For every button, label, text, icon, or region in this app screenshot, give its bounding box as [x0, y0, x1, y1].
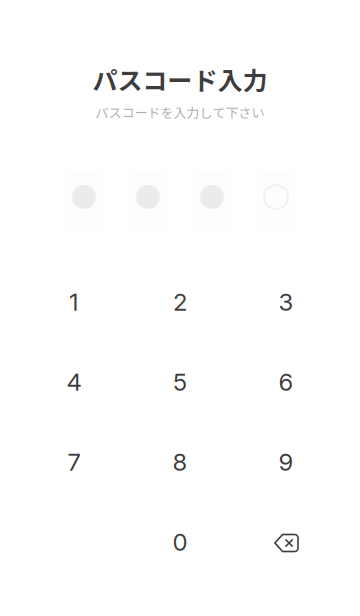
staticText: 2 [173, 287, 187, 316]
staticText: 3 [278, 287, 293, 316]
staticText: 9 [278, 447, 293, 476]
button[interactable]: 7 [21, 422, 127, 502]
staticText: 7 [67, 447, 80, 476]
staticText: 0 [172, 527, 187, 556]
button[interactable]: 8 [127, 422, 233, 502]
button[interactable]: 6 [233, 342, 339, 422]
staticText: 6 [278, 367, 293, 396]
button[interactable]: Delete [233, 502, 339, 582]
button[interactable]: 4 [21, 342, 127, 422]
staticText: 8 [172, 447, 187, 476]
button[interactable]: 2 [127, 262, 233, 342]
staticText: パスコード入力 [92, 61, 267, 97]
button[interactable]: 0 [127, 502, 233, 582]
button[interactable]: 3 [233, 262, 339, 342]
staticText: 4 [66, 367, 81, 396]
button[interactable]: 9 [233, 422, 339, 502]
staticText: 1 [69, 287, 79, 316]
staticText: 5 [173, 367, 187, 396]
button[interactable]: 5 [127, 342, 233, 422]
staticText: パスコードを入力して下さい [95, 102, 264, 121]
button[interactable]: 1 [21, 262, 127, 342]
